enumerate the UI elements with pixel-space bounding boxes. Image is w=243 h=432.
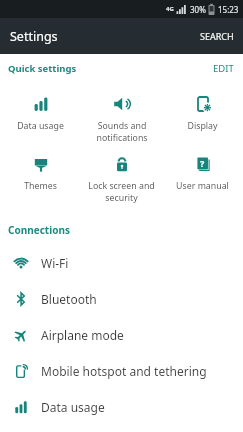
button[interactable]: Data usage xyxy=(0,82,81,144)
staticText: Lock screen and security xyxy=(88,180,155,203)
staticText: 4G xyxy=(166,5,174,13)
staticText: Connections xyxy=(8,223,70,237)
button[interactable]: Mobile hotspot and tethering xyxy=(0,353,243,389)
button[interactable]: Bluetooth xyxy=(0,281,243,317)
button[interactable]: SEARCH xyxy=(200,30,234,42)
staticText: Settings xyxy=(10,28,58,45)
button[interactable]: Data usage xyxy=(0,389,243,425)
staticText: EDIT xyxy=(213,62,234,75)
staticText: Wi-Fi xyxy=(41,255,69,271)
staticText: Data usage xyxy=(41,399,105,415)
staticText: Display xyxy=(187,120,218,132)
button[interactable]: EDIT xyxy=(213,62,234,75)
staticText: Quick settings xyxy=(8,62,77,75)
button[interactable]: Airplane mode xyxy=(0,317,243,353)
staticText: Bluetooth xyxy=(41,291,97,307)
staticText: Sounds and notifications xyxy=(96,120,148,143)
button[interactable]: Themes xyxy=(0,144,81,212)
button[interactable]: Lock screen and security xyxy=(81,144,162,212)
staticText: 15:23 xyxy=(218,4,239,15)
staticText: ? xyxy=(200,157,205,169)
staticText: Data usage xyxy=(17,120,64,132)
staticText: 30% xyxy=(190,4,206,15)
button[interactable]: Display xyxy=(162,82,243,144)
button[interactable]: Wi-Fi xyxy=(0,245,243,281)
staticText: Mobile hotspot and tethering xyxy=(41,363,207,379)
staticText: Themes xyxy=(24,180,57,192)
staticText: SEARCH xyxy=(200,30,234,42)
button[interactable]: Sounds and notifications xyxy=(81,82,162,144)
staticText: User manual xyxy=(176,180,229,192)
button[interactable]: ? xyxy=(162,144,243,212)
staticText: Airplane mode xyxy=(41,327,124,343)
